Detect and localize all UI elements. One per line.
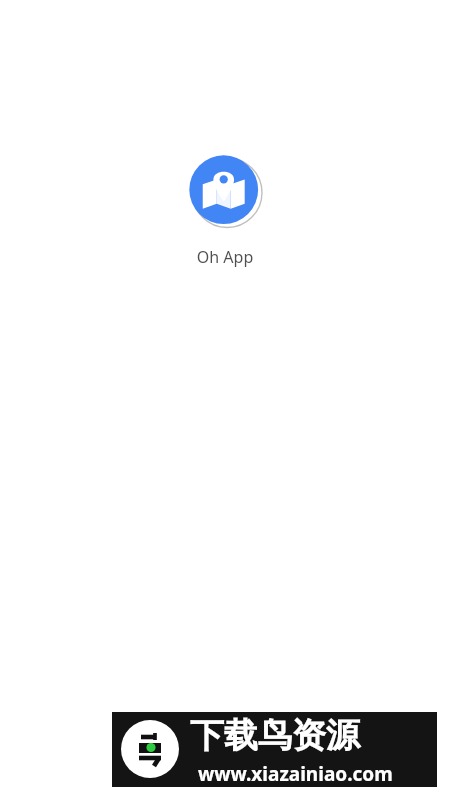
staticText: www.xiazainiao.com [198,761,393,787]
other: Oh App icon [182,148,268,234]
staticText: 下载鸟资源 [190,714,360,757]
staticText: Oh App [161,246,289,268]
button[interactable]: Oh App icon [161,148,289,268]
